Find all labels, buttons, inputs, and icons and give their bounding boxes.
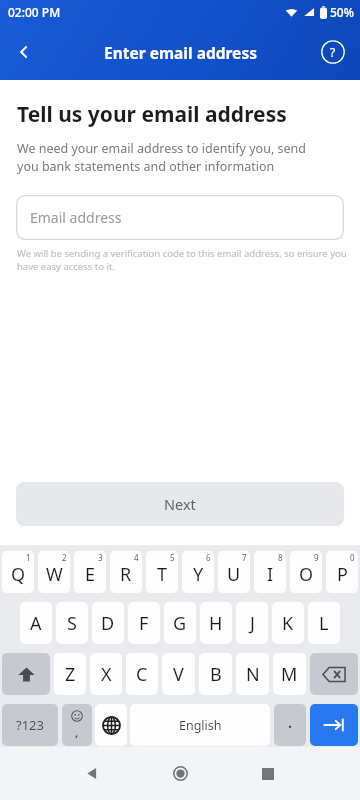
staticText: 4 bbox=[134, 552, 139, 563]
staticText: L bbox=[319, 611, 329, 636]
staticText: G bbox=[173, 611, 187, 636]
button[interactable]: A bbox=[20, 602, 52, 644]
staticText: 6 bbox=[206, 552, 211, 563]
button[interactable]: Q bbox=[2, 551, 34, 593]
staticText: K bbox=[282, 611, 294, 636]
button[interactable]: S bbox=[56, 602, 88, 644]
button[interactable]: C bbox=[126, 653, 158, 695]
staticText: 3 bbox=[98, 552, 103, 563]
staticText: . bbox=[288, 713, 292, 732]
staticText: 5 bbox=[170, 552, 175, 563]
button[interactable]: U bbox=[218, 551, 250, 593]
staticText: W bbox=[46, 562, 63, 587]
staticText: 8 bbox=[278, 552, 283, 563]
button[interactable]: Recent apps bbox=[224, 747, 312, 800]
staticText: 50% bbox=[330, 4, 354, 20]
button[interactable]: I bbox=[254, 551, 286, 593]
staticText: English bbox=[179, 717, 222, 734]
staticText: Email address bbox=[30, 208, 122, 227]
button[interactable]: Change language bbox=[95, 704, 127, 746]
button[interactable]: Backspace bbox=[310, 653, 358, 695]
button[interactable]: X bbox=[90, 653, 122, 695]
staticText: J bbox=[250, 611, 255, 636]
button[interactable]: D bbox=[92, 602, 124, 644]
staticText: Y bbox=[193, 562, 204, 587]
staticText: P bbox=[337, 562, 348, 587]
button[interactable]: H bbox=[200, 602, 232, 644]
staticText: F bbox=[139, 611, 149, 636]
staticText: Z bbox=[65, 662, 76, 687]
button[interactable]: Shift bbox=[2, 653, 50, 695]
staticText: B bbox=[210, 662, 222, 687]
button[interactable]: Next bbox=[310, 704, 358, 746]
staticText: 2 bbox=[62, 552, 67, 563]
staticText: We need your email address to identify y… bbox=[17, 140, 306, 175]
button[interactable]: Help bbox=[311, 30, 355, 74]
staticText: R bbox=[120, 562, 132, 587]
staticText: V bbox=[173, 662, 184, 687]
staticText: S bbox=[67, 611, 77, 636]
button[interactable]: Home bbox=[136, 747, 224, 800]
button[interactable]: Y bbox=[182, 551, 214, 593]
staticText: , bbox=[75, 725, 79, 740]
staticText: D bbox=[101, 611, 115, 636]
button[interactable]: M bbox=[273, 653, 306, 695]
button[interactable]: J bbox=[236, 602, 268, 644]
staticText: 1 bbox=[26, 552, 31, 563]
button[interactable]: Email address bbox=[16, 195, 344, 240]
button[interactable]: V bbox=[162, 653, 195, 695]
button[interactable]: Next bbox=[16, 482, 344, 526]
staticText: 0 bbox=[350, 552, 355, 563]
staticText: 9 bbox=[314, 552, 319, 563]
button[interactable]: Back bbox=[0, 28, 48, 76]
button[interactable]: G bbox=[164, 602, 196, 644]
button[interactable]: ?123 bbox=[2, 704, 58, 746]
staticText: ? bbox=[330, 44, 336, 60]
staticText: T bbox=[157, 562, 168, 587]
staticText: C bbox=[136, 662, 148, 687]
staticText: A bbox=[30, 611, 42, 636]
button[interactable]: K bbox=[272, 602, 304, 644]
staticText: U bbox=[227, 562, 241, 587]
staticText: Q bbox=[11, 562, 26, 587]
staticText: N bbox=[246, 662, 260, 687]
button[interactable]: W bbox=[38, 551, 70, 593]
staticText: H bbox=[209, 611, 223, 636]
button[interactable]: R bbox=[110, 551, 142, 593]
button[interactable]: B bbox=[199, 653, 232, 695]
button[interactable]: F bbox=[128, 602, 160, 644]
button[interactable]: N bbox=[236, 653, 269, 695]
staticText: E bbox=[85, 562, 96, 587]
staticText: M bbox=[281, 662, 298, 687]
button[interactable]: . bbox=[274, 704, 306, 746]
button[interactable]: English bbox=[130, 704, 270, 746]
button[interactable]: Emoji bbox=[62, 704, 92, 746]
button[interactable]: E bbox=[74, 551, 106, 593]
button[interactable]: T bbox=[146, 551, 178, 593]
staticText: Tell us your email address bbox=[17, 100, 287, 129]
button[interactable]: P bbox=[326, 551, 358, 593]
button[interactable]: Back bbox=[48, 747, 136, 800]
staticText: We will be sending a verification code t… bbox=[17, 247, 347, 273]
staticText: 7 bbox=[242, 552, 247, 563]
button[interactable]: O bbox=[290, 551, 322, 593]
staticText: ?123 bbox=[16, 716, 44, 734]
staticText: 02:00 PM bbox=[8, 4, 61, 20]
staticText: Next bbox=[164, 494, 196, 514]
staticText: Enter email address bbox=[104, 42, 257, 63]
button[interactable]: L bbox=[308, 602, 340, 644]
staticText: O bbox=[299, 562, 314, 587]
staticText: X bbox=[101, 662, 112, 687]
staticText: I bbox=[267, 562, 274, 587]
button[interactable]: Z bbox=[54, 653, 86, 695]
